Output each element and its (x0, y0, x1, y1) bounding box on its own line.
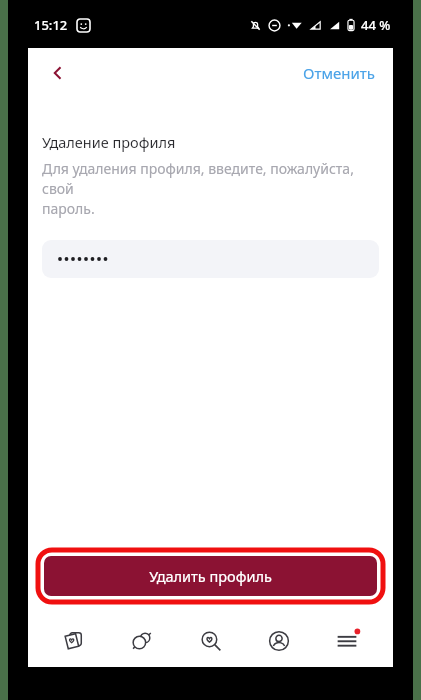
button[interactable]: Отменить (285, 53, 393, 93)
staticText: Удаление профиля (42, 132, 176, 152)
staticText: 15:12 (34, 16, 68, 34)
button[interactable]: Search (183, 617, 239, 665)
staticText: Для удаления профиля, введите, пожалуйст… (42, 159, 379, 218)
button[interactable] (42, 240, 379, 278)
button[interactable]: Profile (251, 617, 307, 665)
staticText: Удалить профиль (149, 566, 272, 586)
button[interactable]: Cards (46, 617, 102, 665)
staticText: Отменить (303, 63, 375, 83)
button[interactable]: Chats (114, 617, 170, 665)
button[interactable]: Удалить профиль (44, 556, 377, 596)
button[interactable]: Menu (319, 617, 375, 665)
button[interactable]: Back (36, 51, 80, 95)
staticText: 44 % (361, 16, 391, 34)
